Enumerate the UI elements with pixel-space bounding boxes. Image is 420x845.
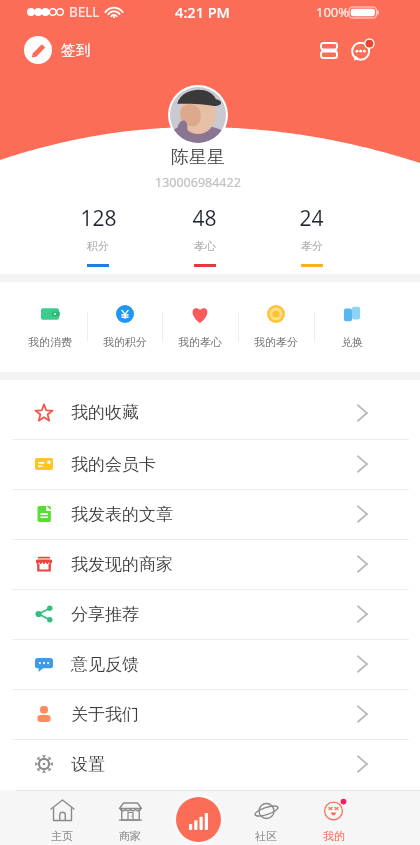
button[interactable]: 我发表的文章 [0, 489, 420, 539]
button[interactable]: 我的孝分 [238, 282, 314, 372]
staticText: 孝心 [194, 239, 216, 253]
staticText: 设置 [71, 754, 105, 775]
staticText: 我发现的商家 [71, 554, 173, 575]
staticText: 陈星星 [171, 146, 225, 169]
staticText: 签到 [61, 41, 90, 59]
button[interactable]: 我的 [300, 790, 368, 845]
staticText: 关于我们 [71, 704, 139, 725]
staticText: 商家 [119, 829, 141, 843]
button[interactable]: 我的孝心 [162, 282, 238, 372]
staticText: 我的收藏 [71, 402, 139, 423]
staticText: 24 [299, 204, 324, 233]
button[interactable]: Messages [346, 34, 378, 66]
staticText: 兑换 [341, 335, 363, 349]
staticText: 积分 [87, 239, 109, 253]
button[interactable]: 设置 [0, 739, 420, 789]
staticText: 我的孝分 [254, 335, 298, 349]
button[interactable]: 分享推荐 [0, 589, 420, 639]
button[interactable]: 我的会员卡 [0, 439, 420, 489]
staticText: 48 [192, 204, 217, 233]
button[interactable]: 128 [45, 204, 151, 267]
staticText: 我的孝心 [178, 335, 222, 349]
staticText: 130006984422 [155, 174, 241, 191]
button[interactable]: 签到 [24, 36, 90, 64]
button[interactable]: 24 [258, 204, 365, 267]
button[interactable]: 商家 [96, 790, 164, 845]
staticText: 我的会员卡 [71, 454, 156, 475]
staticText: 4:21 PM [174, 2, 231, 22]
staticText: 我的积分 [103, 335, 147, 349]
staticText: 我的 [323, 829, 345, 843]
staticText: 100% [316, 3, 350, 21]
staticText: 社区 [255, 829, 277, 843]
button[interactable]: Avatar [170, 87, 226, 143]
staticText: 主页 [51, 829, 73, 843]
button[interactable]: 48 [151, 204, 258, 267]
button[interactable]: 关于我们 [0, 689, 420, 739]
button[interactable]: 主页 [28, 790, 96, 845]
staticText: 我的消费 [28, 335, 72, 349]
staticText: 孝分 [301, 239, 323, 253]
button[interactable]: 意见反馈 [0, 639, 420, 689]
staticText: 分享推荐 [71, 604, 139, 625]
button[interactable]: 我发现的商家 [0, 539, 420, 589]
staticText: 意见反馈 [71, 654, 139, 675]
button[interactable]: 我的消费 [12, 282, 87, 372]
button[interactable]: 兑换 [314, 282, 390, 372]
button[interactable]: Statistics [176, 797, 221, 842]
staticText: 我发表的文章 [71, 504, 173, 525]
button[interactable]: Cards [313, 34, 345, 66]
button[interactable]: 社区 [232, 790, 300, 845]
staticText: 128 [80, 204, 117, 233]
staticText: BELL [69, 3, 100, 21]
button[interactable]: 我的积分 [87, 282, 162, 372]
button[interactable]: 我的收藏 [0, 383, 420, 442]
